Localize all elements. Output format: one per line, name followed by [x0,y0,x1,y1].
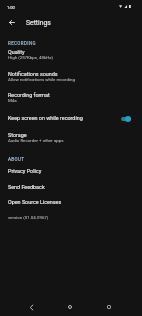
staticText: Open Source Licenses [8,199,62,205]
button[interactable]: Notifications sounds [0,68,142,90]
button[interactable]: Privacy Policy [0,163,142,179]
staticText: Audio Recorder + other apps [8,138,64,143]
button[interactable]: Navigate up [3,13,21,31]
staticText: version (01.04.0967) [8,215,49,220]
button[interactable]: Open Source Licenses [0,194,142,210]
button[interactable]: Back [22,298,40,316]
button[interactable]: Quality [0,46,142,68]
staticText: Allow notifications while recording [8,77,75,82]
button[interactable]: Recent apps [100,298,118,316]
staticText: ABOUT [8,157,25,162]
staticText: Keep screen on while recording [8,115,83,121]
staticText: Storage [8,132,27,138]
staticText: Settings [26,19,51,27]
staticText: Recording format [8,92,50,98]
staticText: 1:00 [7,5,15,10]
staticText: Notifications sounds [8,71,58,77]
button[interactable]: Home [61,298,79,316]
staticText: RECORDING [8,41,36,46]
button[interactable]: Keep screen on while recording [0,109,142,127]
staticText: Send Feedback [8,184,45,190]
button[interactable]: Storage [0,129,142,151]
staticText: M4a [8,98,17,103]
staticText: High (257Kbps, 48kHz) [8,55,53,60]
staticText: Privacy Policy [8,168,42,174]
button[interactable]: Recording format [0,89,142,111]
button[interactable]: Send Feedback [0,179,142,195]
staticText: Quality [8,49,25,55]
